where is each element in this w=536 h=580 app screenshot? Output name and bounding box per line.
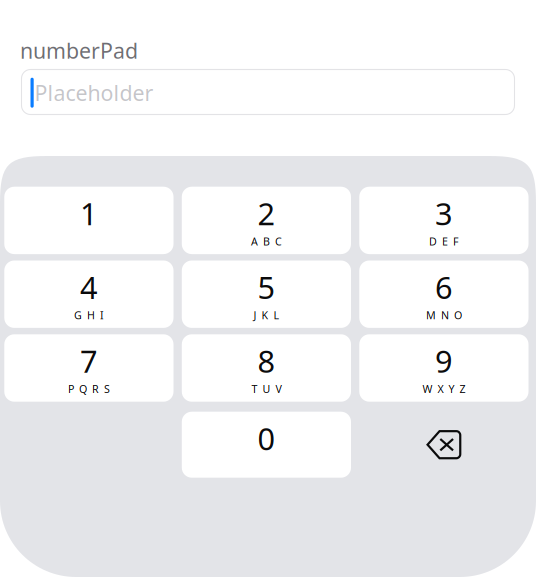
staticText: 6 — [435, 267, 453, 307]
staticText: numberPad — [20, 36, 138, 64]
staticText: 9 — [435, 341, 453, 381]
staticText: G H I — [74, 308, 104, 322]
button[interactable]: 6 — [359, 260, 528, 328]
staticText: 5 — [257, 267, 275, 307]
staticText: 7 — [80, 341, 98, 381]
button[interactable]: 5 — [182, 260, 351, 328]
button[interactable]: 7 — [4, 334, 173, 402]
staticText: Placeholder — [34, 78, 153, 107]
staticText: P Q R S — [68, 382, 110, 396]
staticText: 0 — [257, 418, 275, 459]
button[interactable]: 1 — [4, 187, 173, 254]
staticText: T U V — [251, 382, 281, 396]
staticText: 4 — [80, 267, 98, 307]
staticText: W X Y Z — [422, 382, 465, 396]
button[interactable]: 3 — [359, 187, 528, 254]
button[interactable]: 4 — [4, 260, 173, 328]
button[interactable]: 0 — [182, 412, 351, 478]
staticText: A B C — [251, 234, 282, 248]
button[interactable]: 2 — [182, 187, 351, 254]
button[interactable]: Delete — [359, 412, 528, 478]
staticText: 1 — [80, 193, 98, 234]
button[interactable]: 9 — [359, 334, 528, 402]
staticText: 2 — [257, 193, 275, 234]
staticText: 8 — [257, 341, 275, 381]
staticText: M N O — [426, 308, 462, 322]
staticText: 3 — [435, 193, 453, 234]
staticText: J K L — [253, 308, 279, 322]
button[interactable]: 8 — [182, 334, 351, 402]
staticText: D E F — [429, 234, 459, 248]
